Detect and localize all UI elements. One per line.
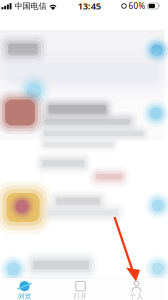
button[interactable]: 浏览 — [0, 281, 52, 300]
staticText: 13:45 — [78, 0, 101, 12]
staticText: 打开 — [73, 292, 87, 300]
button[interactable]: 个人 — [108, 281, 164, 300]
button[interactable]: 打开 — [52, 281, 108, 300]
staticText: 浏览 — [17, 292, 31, 300]
staticText: 60% — [128, 1, 145, 11]
staticText: 中国电信 — [14, 1, 46, 11]
staticText: 个人 — [129, 292, 143, 300]
